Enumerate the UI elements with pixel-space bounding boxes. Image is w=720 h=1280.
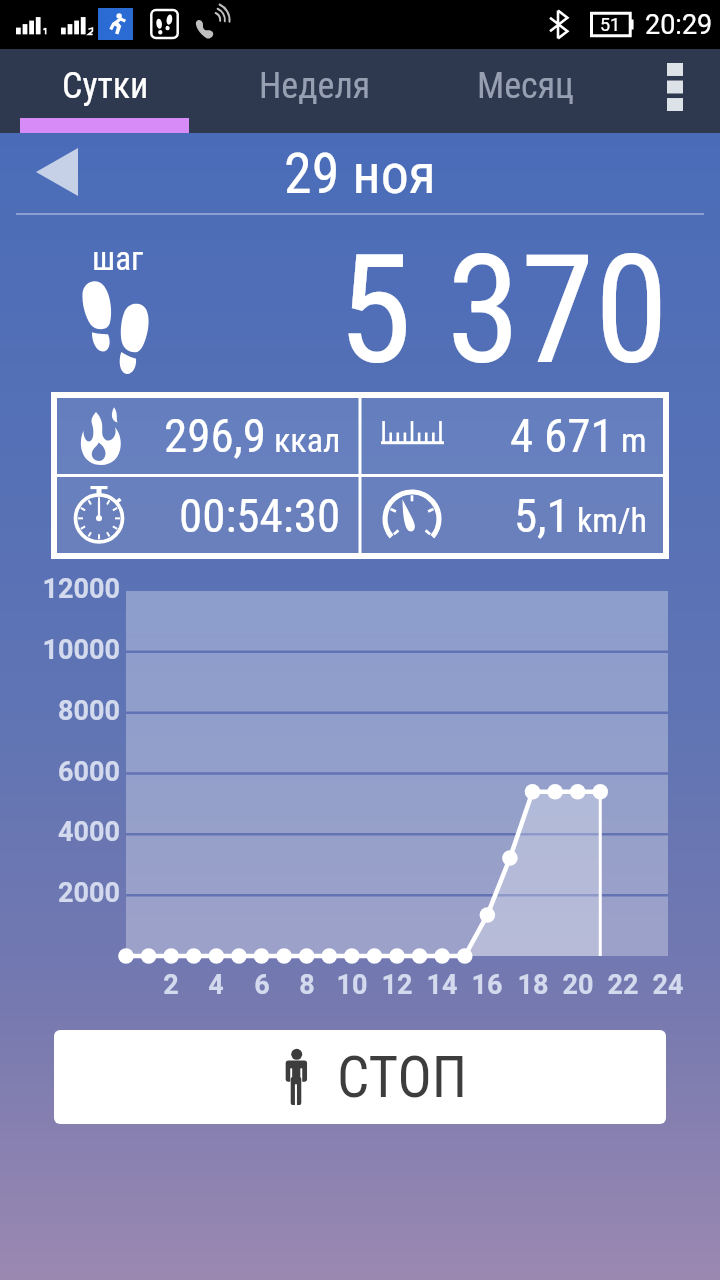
button[interactable]: Неделя [210,49,420,133]
staticText: 18 [503,969,563,1001]
staticText: 4 671 [510,408,614,463]
staticText: 16 [457,969,517,1001]
staticText: ккал [274,420,341,460]
staticText: 20:29 [645,9,713,41]
button[interactable]: 5,1 [360,475,666,556]
staticText: 5,1 [514,488,570,543]
staticText: 6000 [0,756,120,788]
staticText: km/h [577,500,647,540]
staticText: 29 ноя [0,141,720,207]
staticText: шаг [92,239,144,278]
button[interactable]: More options [630,49,720,133]
staticText: Неделя [259,65,371,107]
staticText: 12000 [0,573,120,605]
staticText: 51 [600,14,621,35]
staticText: 2000 [0,877,120,909]
staticText: 6 [232,969,292,1001]
button[interactable]: 00:54:30 [54,475,360,556]
staticText: 00:54:30 [179,488,341,543]
button[interactable]: 4 671 [360,395,666,475]
button[interactable]: Previous day [26,141,88,203]
button[interactable]: Месяц [420,49,630,133]
staticText: 296,9 [164,408,267,463]
staticText: 14 [412,969,472,1001]
staticText: 20 [548,969,608,1001]
staticText: m [621,420,647,460]
button[interactable]: СТОП [54,1030,666,1124]
staticText: 12 [367,969,427,1001]
staticText: 4 [186,969,246,1001]
staticText: 4000 [0,816,120,848]
staticText: 8000 [0,695,120,727]
staticText: 8 [277,969,337,1001]
staticText: 22 [593,969,653,1001]
button[interactable]: 296,9 [54,395,360,475]
staticText: 2 [141,969,201,1001]
staticText: СТОП [337,1044,468,1111]
staticText: Месяц [477,65,574,107]
staticText: 24 [638,969,698,1001]
button[interactable]: Сутки [0,49,210,133]
staticText: 10000 [0,634,120,666]
staticText: 5 370 [338,223,669,399]
staticText: Сутки [62,65,149,107]
staticText: 10 [322,969,382,1001]
